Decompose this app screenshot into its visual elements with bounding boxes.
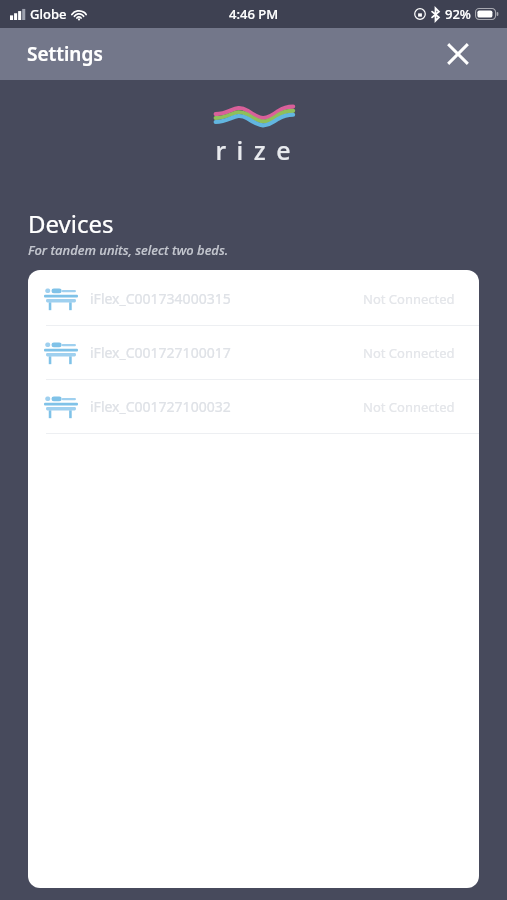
staticText: Settings — [27, 41, 103, 67]
staticText: iFlex_C001727100032 — [90, 397, 231, 416]
staticText: Not Connected — [363, 398, 455, 416]
staticText: Devices — [28, 207, 114, 240]
staticText: Not Connected — [363, 290, 455, 308]
staticText: 92% — [445, 5, 471, 23]
staticText: iFlex_C001727100017 — [90, 343, 231, 362]
staticText: iFlex_C001734000315 — [90, 289, 231, 308]
button[interactable]: Close — [441, 37, 475, 71]
staticText: Not Connected — [363, 344, 455, 362]
button[interactable]: iFlex_C001734000315 — [28, 272, 479, 325]
staticText: r i z e — [215, 133, 293, 167]
button[interactable]: iFlex_C001727100017 — [28, 326, 479, 379]
staticText: Globe — [30, 5, 67, 23]
staticText: 4:46 PM — [229, 5, 279, 23]
button[interactable]: iFlex_C001727100032 — [28, 380, 479, 433]
staticText: For tandem units, select two beds. — [28, 241, 229, 259]
